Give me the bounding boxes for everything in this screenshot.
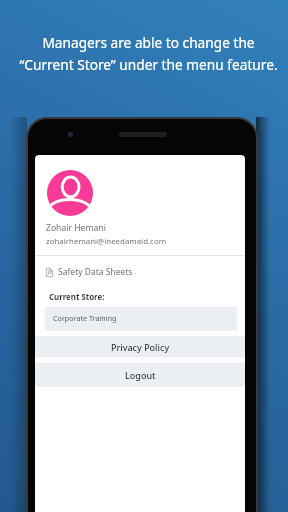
button[interactable]: Corporate Training (45, 307, 237, 331)
button[interactable]: Privacy Policy (35, 336, 245, 357)
staticText: Privacy Policy (111, 341, 170, 353)
button[interactable]: Logout (35, 363, 245, 387)
staticText: Safety Data Sheets (58, 266, 133, 278)
staticText: Corporate Training (53, 313, 117, 323)
staticText: zohairhemani@ineedamaid.com (46, 236, 167, 247)
staticText: Managers are able to change the (42, 33, 255, 52)
button[interactable]: Profile photo (47, 170, 93, 216)
staticText: Current Store: (49, 292, 105, 303)
staticText: “Current Store” under the menu feature. (19, 55, 278, 74)
staticText: Logout (125, 369, 156, 381)
staticText: Zohair Hemani (46, 222, 106, 234)
button[interactable]: Safety Data Sheets (35, 259, 245, 285)
